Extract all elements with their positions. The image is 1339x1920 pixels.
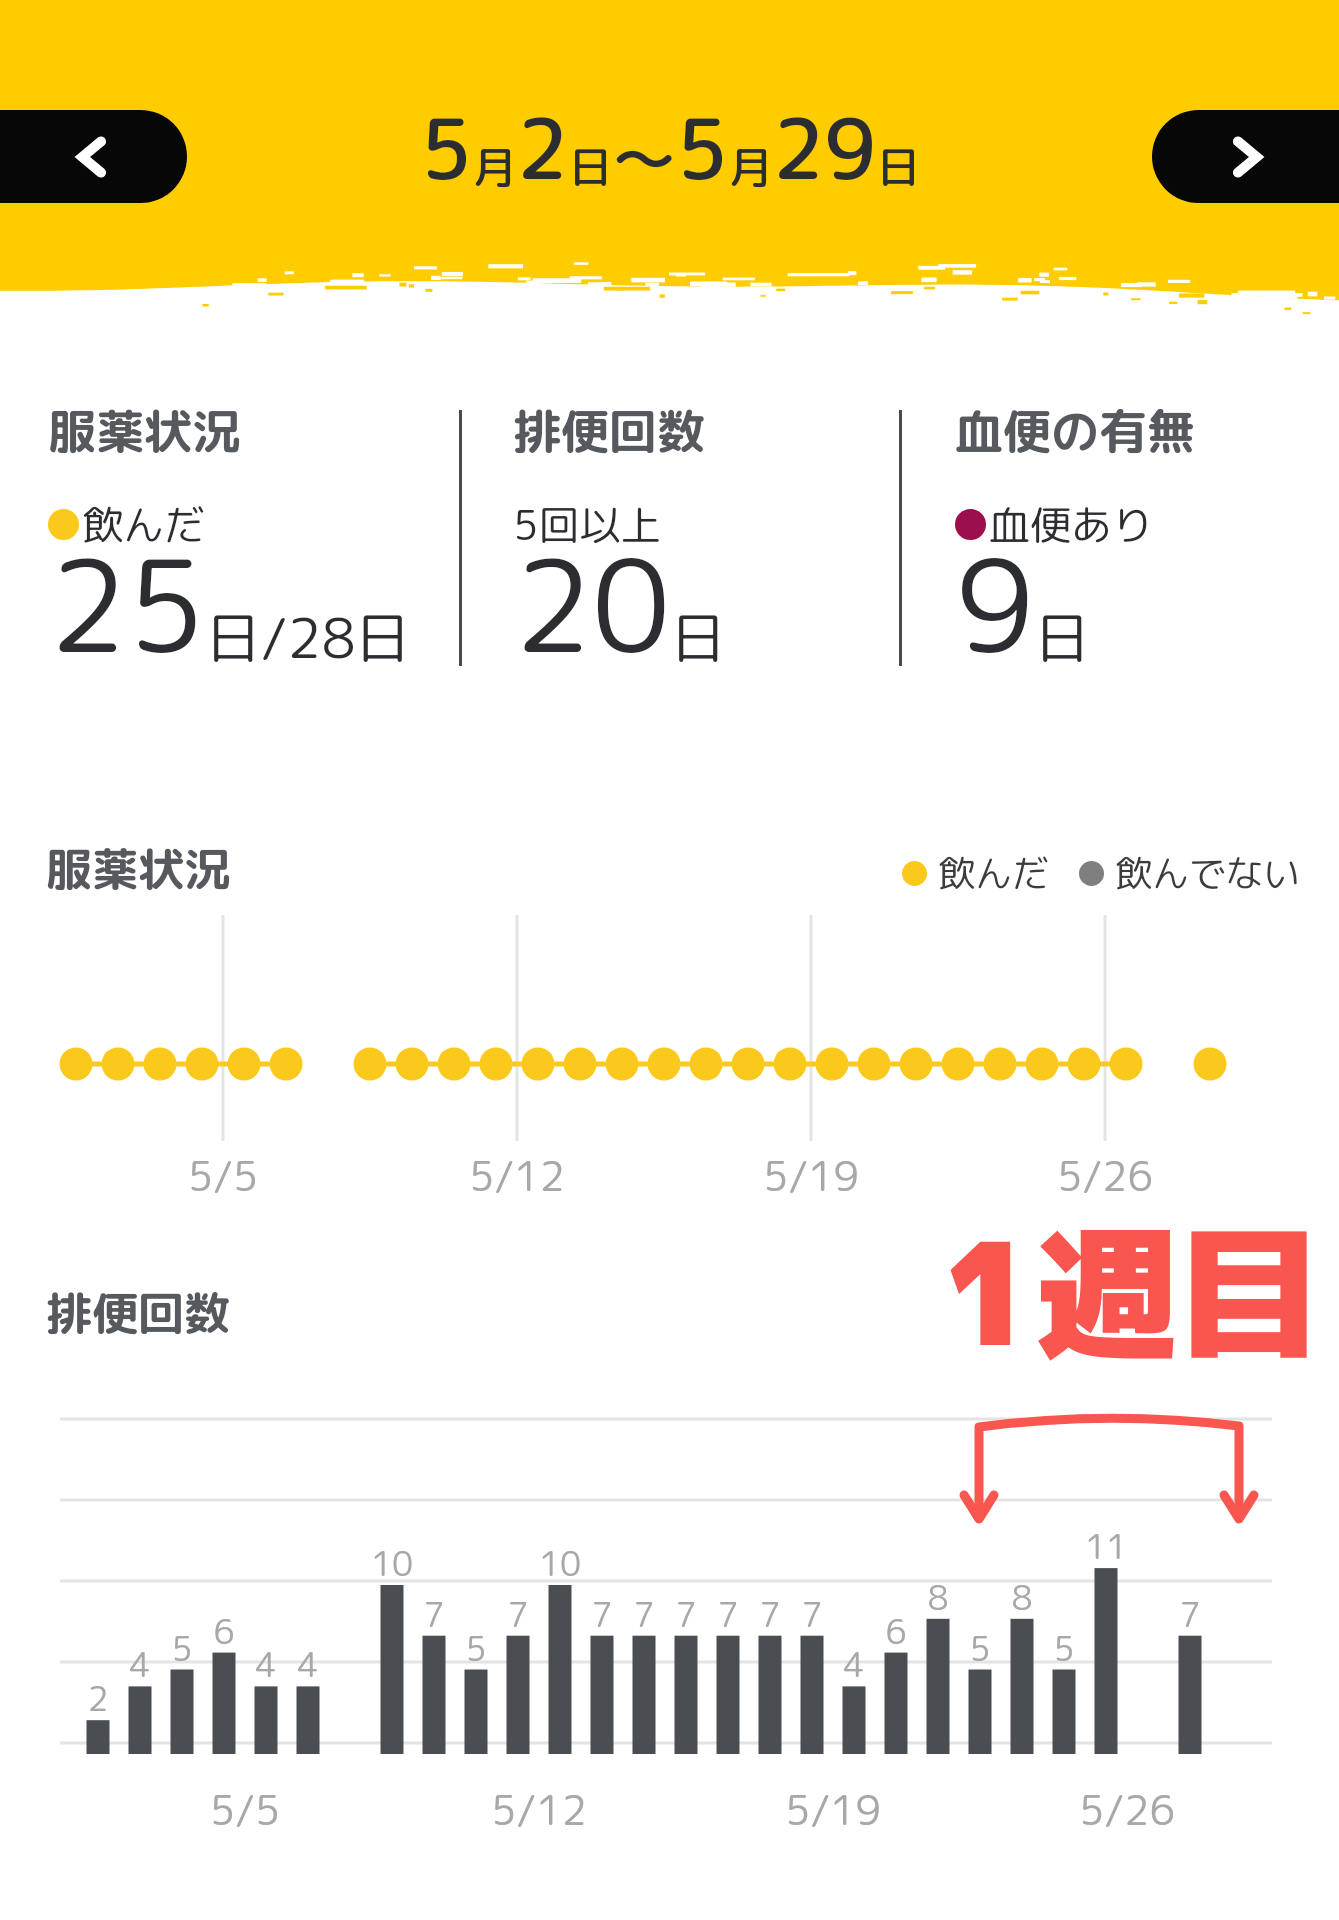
staticText: 29: [772, 90, 877, 206]
staticText: 5: [420, 90, 473, 206]
staticText: 5/12: [427, 1147, 607, 1204]
staticText: 排便回数: [513, 397, 706, 464]
staticText: 飲んでない: [1115, 847, 1300, 899]
staticText: 5/5: [133, 1147, 313, 1204]
staticText: 〜: [612, 113, 676, 202]
staticText: 5: [416, 1624, 536, 1671]
staticText: 5回以上: [513, 496, 662, 553]
staticText: 血便の有無: [955, 397, 1196, 464]
staticText: 飲んだ: [938, 847, 1049, 899]
staticText: 9: [956, 517, 1035, 693]
staticText: 20: [514, 517, 671, 693]
staticText: 11: [1046, 1522, 1166, 1569]
staticText: 飲んだ: [82, 496, 205, 553]
staticText: 10: [332, 1539, 452, 1586]
staticText: 月: [473, 137, 516, 197]
staticText: 5: [676, 90, 729, 206]
staticText: 2: [516, 90, 569, 206]
staticText: 7: [668, 1590, 788, 1637]
staticText: 5: [122, 1624, 242, 1671]
staticText: 5/19: [721, 1147, 901, 1204]
staticText: 日: [877, 137, 920, 197]
staticText: 6: [836, 1607, 956, 1654]
staticText: 7: [626, 1590, 746, 1637]
staticText: 7: [710, 1590, 830, 1637]
staticText: 4: [206, 1640, 326, 1687]
staticText: 服薬状況: [48, 397, 241, 464]
staticText: 1週目: [942, 1192, 1320, 1390]
staticText: 4: [80, 1640, 200, 1687]
staticText: 排便回数: [46, 1281, 230, 1345]
staticText: 6: [164, 1607, 284, 1654]
staticText: 25: [49, 517, 206, 693]
staticText: 日: [569, 137, 612, 197]
staticText: 服薬状況: [46, 837, 230, 901]
staticText: 8: [962, 1573, 1082, 1620]
staticText: 4: [248, 1640, 368, 1687]
staticText: 7: [584, 1590, 704, 1637]
button[interactable]: Next period: [1152, 110, 1339, 203]
staticText: 10: [500, 1539, 620, 1586]
staticText: 2: [38, 1674, 158, 1721]
staticText: 7: [374, 1590, 494, 1637]
staticText: 8: [878, 1573, 998, 1620]
button[interactable]: Previous period: [0, 110, 187, 203]
staticText: 5/26: [1015, 1147, 1195, 1204]
staticText: 月: [729, 137, 772, 197]
staticText: 7: [1130, 1590, 1250, 1637]
staticText: 7: [752, 1590, 872, 1637]
staticText: 日/28日: [206, 599, 411, 676]
staticText: 5: [1004, 1624, 1124, 1671]
staticText: 5/19: [743, 1781, 923, 1838]
staticText: 7: [542, 1590, 662, 1637]
staticText: 日: [671, 599, 727, 676]
staticText: 5/26: [1037, 1781, 1217, 1838]
staticText: 4: [794, 1640, 914, 1687]
staticText: 7: [458, 1590, 578, 1637]
staticText: 5/12: [449, 1781, 629, 1838]
staticText: 5/5: [155, 1781, 335, 1838]
staticText: 血便あり: [989, 496, 1153, 553]
staticText: 日: [1035, 599, 1091, 676]
staticText: 5: [920, 1624, 1040, 1671]
